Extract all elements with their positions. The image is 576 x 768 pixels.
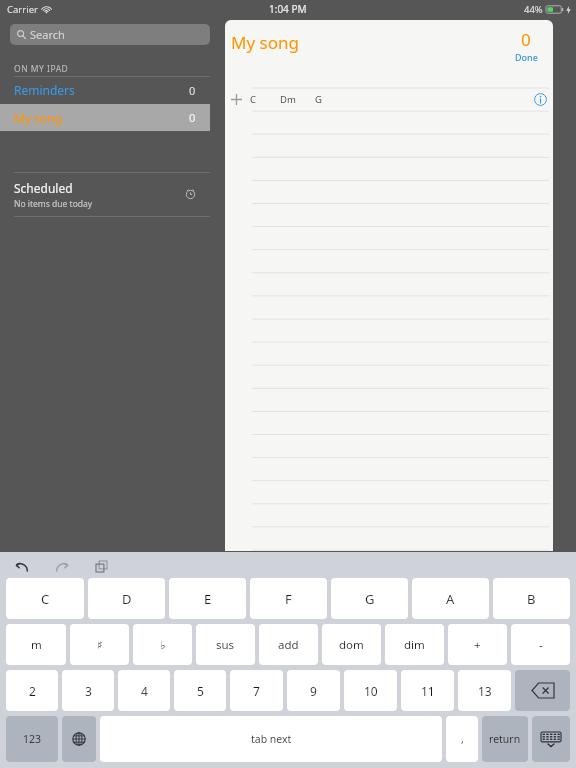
button[interactable]: 5: [174, 670, 226, 711]
staticText: C: [41, 590, 50, 608]
button[interactable]: G: [331, 578, 408, 619]
staticText: A: [446, 590, 455, 608]
staticText: No items due today: [14, 198, 93, 210]
button[interactable]: Hide keyboard: [532, 716, 570, 762]
staticText: 5: [197, 683, 204, 699]
staticText: 4: [141, 683, 148, 699]
staticText: C: [250, 93, 257, 106]
button[interactable]: 3: [62, 670, 114, 711]
staticText: 11: [421, 683, 435, 699]
button[interactable]: 13: [458, 670, 511, 711]
staticText: Dm: [280, 93, 296, 106]
button[interactable]: tab next: [100, 716, 442, 762]
staticText: add: [278, 637, 299, 653]
staticText: Reminders: [14, 82, 75, 98]
button[interactable]: ♯: [70, 624, 129, 665]
staticText: return: [489, 732, 521, 746]
staticText: My song: [14, 110, 62, 126]
button[interactable]: Paste: [90, 555, 112, 577]
staticText: dom: [339, 637, 364, 653]
button[interactable]: 2: [6, 670, 58, 711]
button[interactable]: D: [88, 578, 165, 619]
staticText: 123: [23, 732, 42, 746]
button[interactable]: Info: [527, 88, 553, 110]
staticText: tab next: [251, 732, 292, 746]
staticText: ,: [461, 732, 464, 746]
staticText: sus: [216, 637, 235, 653]
staticText: E: [204, 590, 212, 608]
button[interactable]: My song: [0, 104, 210, 131]
button[interactable]: -: [511, 624, 570, 665]
staticText: m: [31, 637, 42, 653]
staticText: ♯: [97, 638, 103, 651]
staticText: 13: [478, 683, 492, 699]
button[interactable]: Redo: [51, 555, 73, 577]
button[interactable]: E: [169, 578, 246, 619]
staticText: Search: [30, 27, 65, 42]
button[interactable]: ♭: [133, 624, 192, 665]
staticText: 0: [189, 83, 196, 98]
button[interactable]: F: [250, 578, 327, 619]
staticText: Done: [515, 51, 538, 63]
button[interactable]: Undo: [10, 555, 32, 577]
staticText: ♭: [160, 638, 166, 651]
button[interactable]: Search: [10, 24, 210, 45]
button[interactable]: sus: [196, 624, 255, 665]
button[interactable]: ,: [446, 716, 478, 762]
staticText: 9: [310, 683, 317, 699]
staticText: Carrier: [7, 3, 38, 16]
button[interactable]: +: [448, 624, 507, 665]
button[interactable]: C: [6, 578, 84, 619]
staticText: ON MY IPAD: [14, 63, 69, 75]
button[interactable]: Reminders: [0, 77, 210, 103]
button[interactable]: add: [259, 624, 318, 665]
button[interactable]: B: [493, 578, 570, 619]
staticText: dim: [404, 637, 425, 653]
staticText: +: [474, 637, 481, 653]
staticText: 44%: [524, 3, 543, 16]
staticText: 2: [29, 683, 36, 699]
button[interactable]: A: [412, 578, 489, 619]
button[interactable]: 7: [230, 670, 283, 711]
button[interactable]: 10: [344, 670, 397, 711]
staticText: My song: [231, 31, 299, 54]
staticText: 0: [521, 28, 531, 51]
button[interactable]: dim: [385, 624, 444, 665]
button[interactable]: dom: [322, 624, 381, 665]
button[interactable]: 4: [118, 670, 170, 711]
staticText: 0: [189, 110, 196, 125]
button[interactable]: 123: [6, 716, 58, 762]
staticText: 1:04 PM: [269, 2, 307, 16]
button[interactable]: Add chord: [225, 88, 247, 110]
staticText: 10: [364, 683, 378, 699]
button[interactable]: Scheduled: [0, 173, 210, 216]
staticText: G: [315, 93, 322, 106]
staticText: -: [539, 637, 543, 653]
staticText: G: [365, 590, 375, 608]
button[interactable]: Delete: [515, 670, 570, 711]
button[interactable]: m: [6, 624, 66, 665]
button[interactable]: Change keyboard: [62, 716, 96, 762]
button[interactable]: 9: [287, 670, 340, 711]
staticText: D: [122, 590, 132, 608]
button[interactable]: return: [482, 716, 528, 762]
staticText: F: [285, 590, 292, 608]
staticText: B: [527, 590, 536, 608]
button[interactable]: 11: [401, 670, 454, 711]
staticText: 7: [253, 683, 260, 699]
staticText: Scheduled: [14, 180, 73, 196]
staticText: 3: [85, 683, 92, 699]
button[interactable]: 0: [505, 28, 547, 63]
